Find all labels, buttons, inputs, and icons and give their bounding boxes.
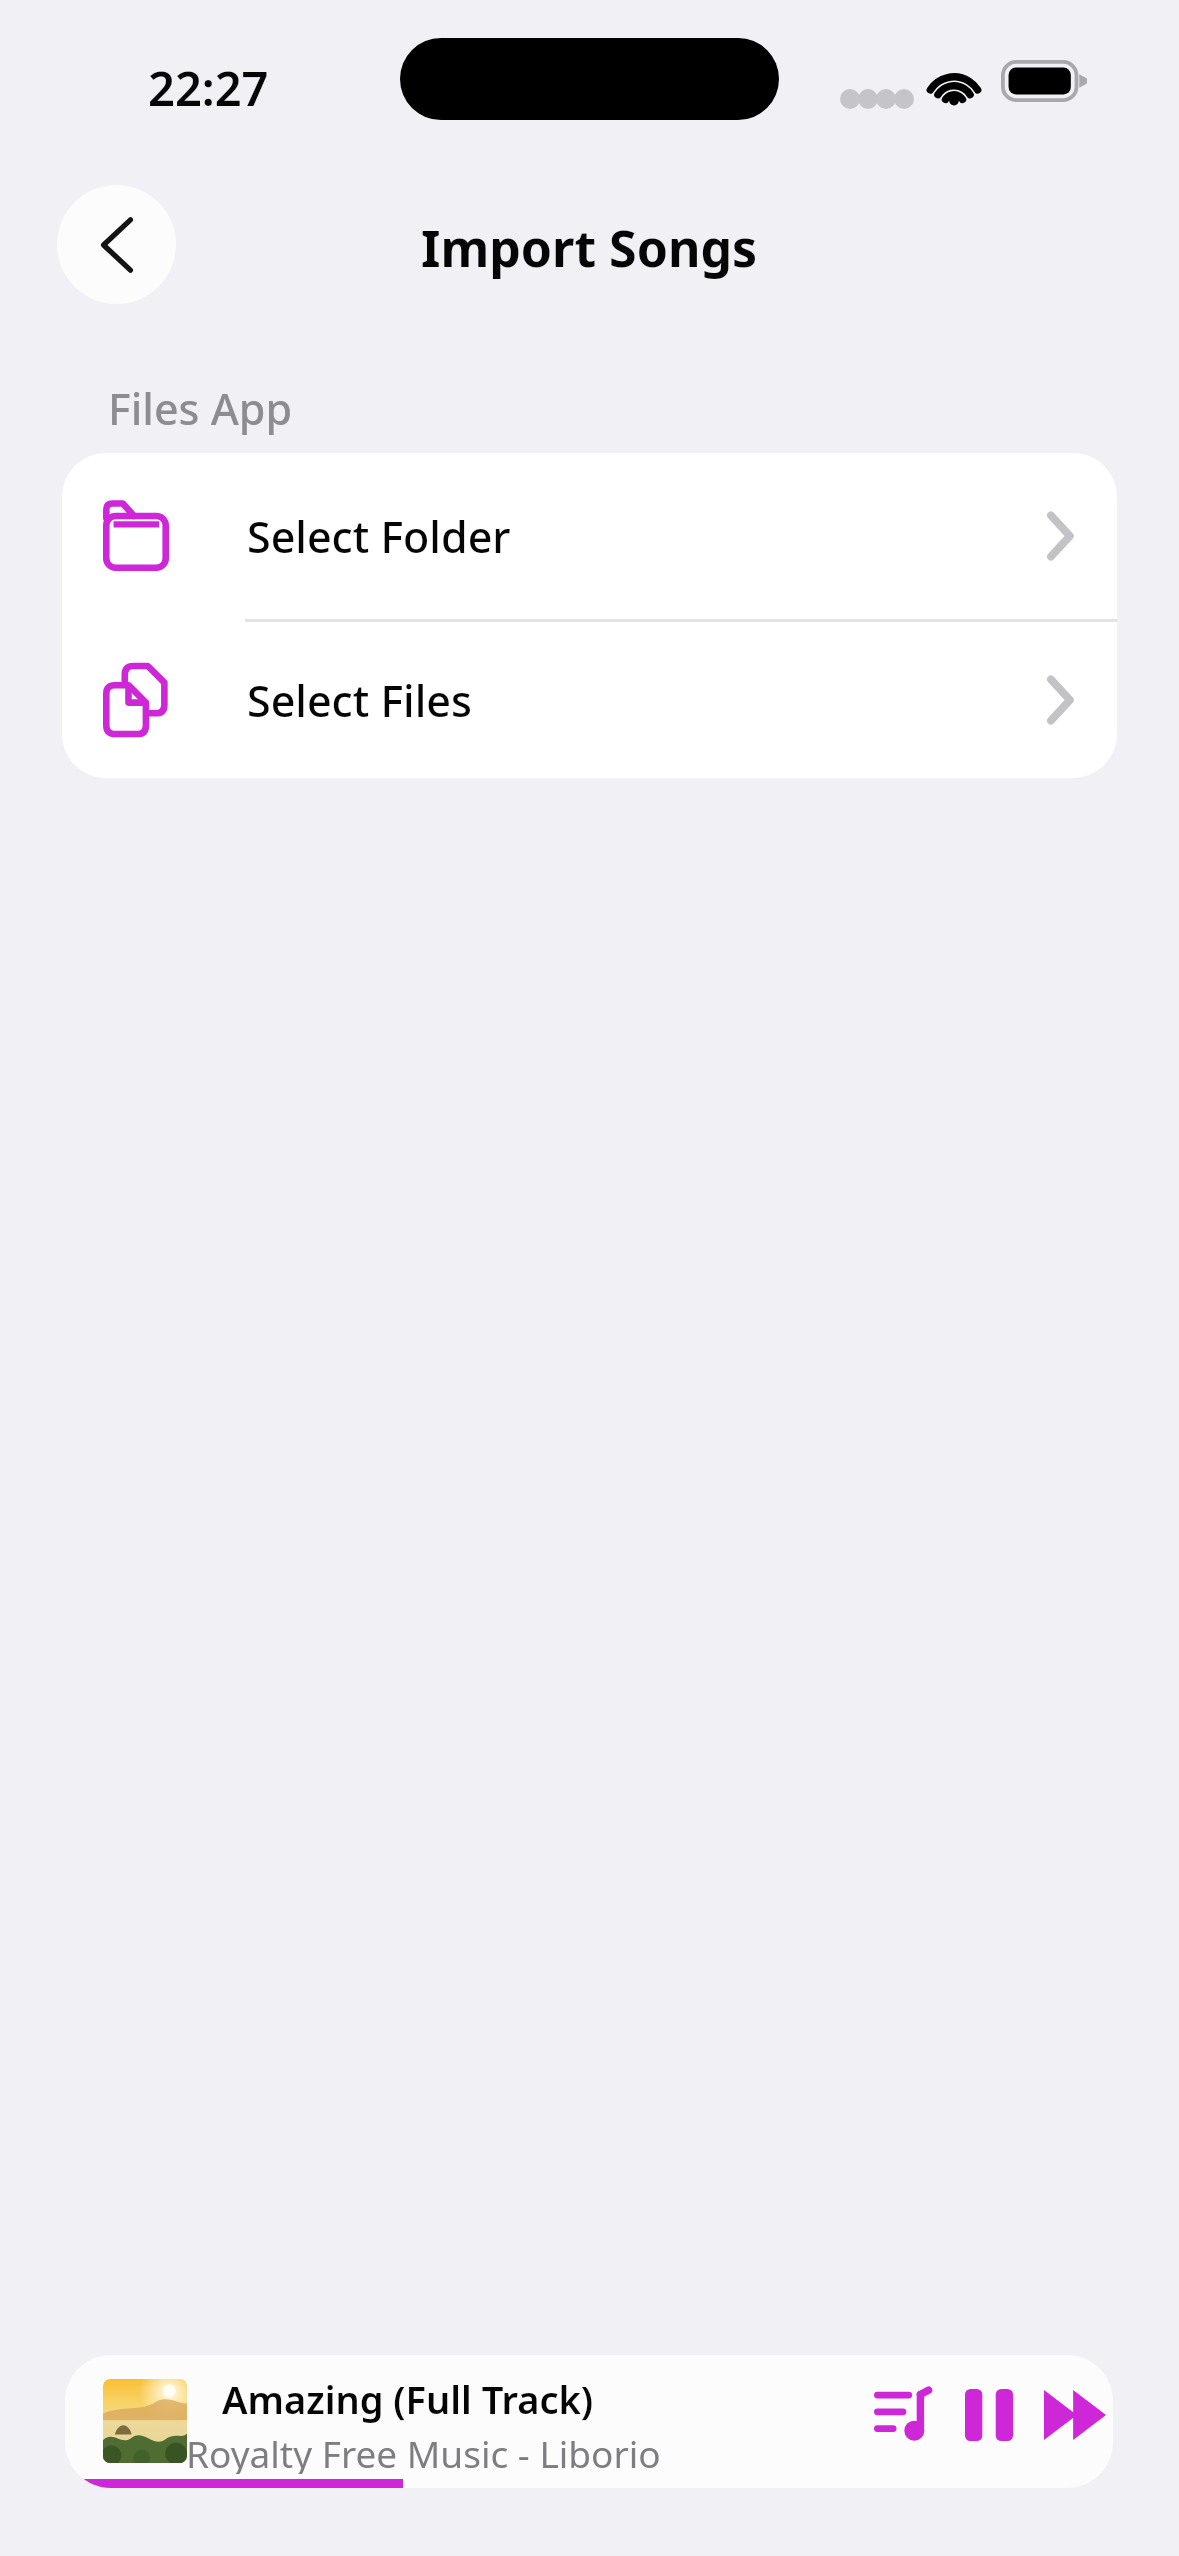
staticText: Royalty Free Music - Liborio Conti <box>186 2428 756 2474</box>
button[interactable]: Amazing (Full Track) <box>65 2355 1113 2488</box>
button[interactable]: Fast forward <box>1032 2372 1113 2458</box>
staticText: Select Folder <box>247 507 511 566</box>
staticText: Import Songs <box>421 214 758 282</box>
staticText: Select Files <box>247 671 472 730</box>
button[interactable]: Select Folder <box>62 453 1117 619</box>
button[interactable]: Back <box>57 185 176 304</box>
button[interactable]: Pause <box>946 2372 1032 2458</box>
button[interactable]: Select Files <box>62 622 1117 778</box>
staticText: 22:27 <box>148 56 269 120</box>
staticText: Amazing (Full Track) <box>222 2373 594 2425</box>
staticText: Files App <box>108 379 293 438</box>
button[interactable]: Queue <box>860 2372 946 2458</box>
